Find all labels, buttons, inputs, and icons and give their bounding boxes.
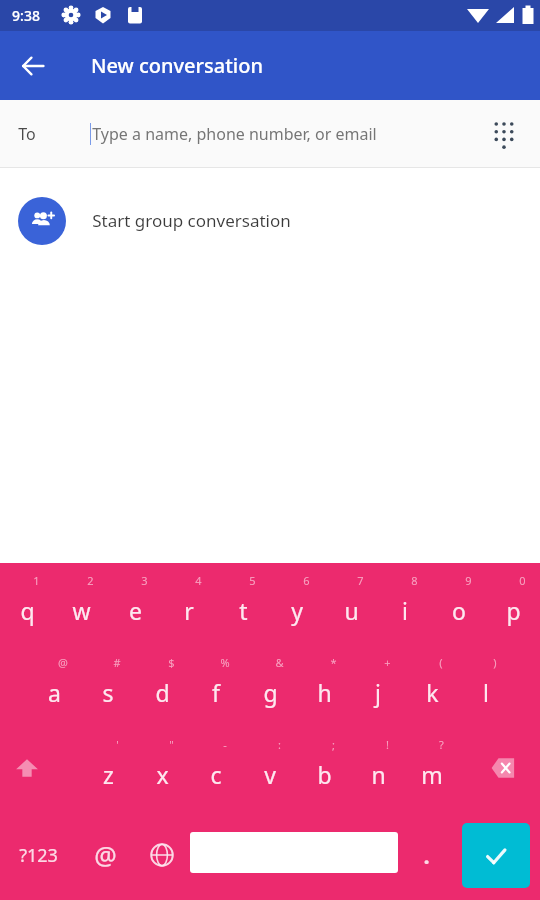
button[interactable]: + bbox=[351, 645, 405, 727]
staticText: 2 bbox=[87, 573, 94, 588]
staticText: ! bbox=[386, 737, 389, 752]
staticText: e bbox=[129, 595, 142, 626]
button[interactable]: 0 bbox=[486, 563, 540, 645]
staticText: g bbox=[263, 677, 278, 708]
staticText: $ bbox=[168, 655, 175, 670]
staticText: New conversation bbox=[91, 52, 263, 79]
staticText: ; bbox=[332, 737, 335, 752]
staticText: Type a name, phone number, or email bbox=[92, 123, 377, 145]
staticText: j bbox=[375, 677, 381, 708]
button[interactable]: Done bbox=[462, 823, 530, 888]
staticText: t bbox=[239, 595, 248, 626]
staticText: 8 bbox=[411, 573, 418, 588]
staticText: # bbox=[113, 655, 121, 670]
staticText: ( bbox=[439, 655, 443, 670]
staticText: m bbox=[421, 759, 443, 790]
staticText: b bbox=[317, 759, 332, 790]
button[interactable]: ?123 bbox=[0, 816, 76, 894]
staticText: 0 bbox=[519, 573, 526, 588]
staticText: q bbox=[20, 595, 35, 626]
staticText: w bbox=[72, 595, 91, 626]
staticText: 4 bbox=[195, 573, 202, 588]
staticText: @ bbox=[94, 838, 117, 872]
staticText: ?123 bbox=[19, 843, 58, 868]
button[interactable]: * bbox=[297, 645, 351, 727]
staticText: c bbox=[210, 759, 222, 790]
staticText: 5 bbox=[249, 573, 256, 588]
button[interactable]: 9 bbox=[432, 563, 486, 645]
staticText: r bbox=[184, 595, 194, 626]
button[interactable]: $ bbox=[135, 645, 189, 727]
button[interactable]: Backspace bbox=[459, 727, 540, 809]
staticText: n bbox=[371, 759, 386, 790]
staticText: - bbox=[223, 737, 227, 752]
staticText: Start group conversation bbox=[92, 209, 291, 232]
button[interactable]: Start group conversation bbox=[0, 168, 540, 273]
button[interactable]: ! bbox=[351, 727, 405, 809]
staticText: 1 bbox=[33, 573, 40, 588]
staticText: p bbox=[506, 595, 521, 626]
staticText: d bbox=[155, 677, 170, 708]
staticText: a bbox=[48, 677, 61, 708]
button[interactable]: 5 bbox=[216, 563, 270, 645]
staticText: : bbox=[278, 737, 281, 752]
staticText: % bbox=[220, 655, 230, 670]
staticText: v bbox=[264, 759, 276, 790]
button[interactable]: 6 bbox=[270, 563, 324, 645]
staticText: + bbox=[384, 655, 391, 670]
staticText: ? bbox=[439, 737, 444, 752]
staticText: u bbox=[344, 595, 359, 626]
staticText: ) bbox=[493, 655, 497, 670]
button[interactable]: & bbox=[243, 645, 297, 727]
staticText: y bbox=[291, 595, 303, 626]
button[interactable]: 3 bbox=[108, 563, 162, 645]
button[interactable]: % bbox=[189, 645, 243, 727]
button[interactable]: 2 bbox=[54, 563, 108, 645]
staticText: & bbox=[275, 655, 284, 670]
staticText: h bbox=[317, 677, 332, 708]
staticText: o bbox=[452, 595, 466, 626]
staticText: f bbox=[212, 677, 220, 708]
staticText: 6 bbox=[303, 573, 310, 588]
button[interactable]: # bbox=[81, 645, 135, 727]
staticText: To bbox=[18, 123, 36, 145]
button[interactable]: Change language bbox=[134, 816, 190, 894]
button[interactable]: " bbox=[135, 727, 189, 809]
button[interactable]: Dialpad bbox=[482, 112, 526, 156]
button[interactable]: 7 bbox=[324, 563, 378, 645]
staticText: i bbox=[402, 595, 408, 626]
button[interactable]: ? bbox=[405, 727, 459, 809]
button[interactable]: ) bbox=[459, 645, 513, 727]
staticText: k bbox=[426, 677, 439, 708]
button[interactable]: 8 bbox=[378, 563, 432, 645]
button[interactable]: To bbox=[0, 100, 540, 167]
button[interactable]: Space bbox=[190, 832, 398, 873]
button[interactable]: ' bbox=[81, 727, 135, 809]
button[interactable]: ( bbox=[405, 645, 459, 727]
staticText: " bbox=[169, 737, 174, 752]
staticText: 7 bbox=[357, 573, 364, 588]
staticText: ' bbox=[116, 737, 119, 752]
button[interactable]: 4 bbox=[162, 563, 216, 645]
button[interactable]: @ bbox=[76, 816, 134, 894]
button[interactable]: - bbox=[189, 727, 243, 809]
staticText: s bbox=[102, 677, 114, 708]
button[interactable]: @ bbox=[27, 645, 81, 727]
button[interactable]: . bbox=[398, 816, 454, 894]
staticText: l bbox=[483, 677, 489, 708]
button[interactable]: Back bbox=[5, 38, 61, 94]
staticText: * bbox=[330, 655, 337, 670]
staticText: x bbox=[156, 759, 169, 790]
staticText: @ bbox=[58, 655, 68, 670]
staticText: 3 bbox=[141, 573, 148, 588]
staticText: . bbox=[423, 840, 430, 870]
staticText: 9:38 bbox=[12, 6, 40, 25]
button[interactable]: ; bbox=[297, 727, 351, 809]
button[interactable]: Shift bbox=[0, 727, 54, 809]
staticText: 9 bbox=[465, 573, 472, 588]
button[interactable]: 1 bbox=[0, 563, 54, 645]
button[interactable]: : bbox=[243, 727, 297, 809]
staticText: z bbox=[103, 759, 114, 790]
